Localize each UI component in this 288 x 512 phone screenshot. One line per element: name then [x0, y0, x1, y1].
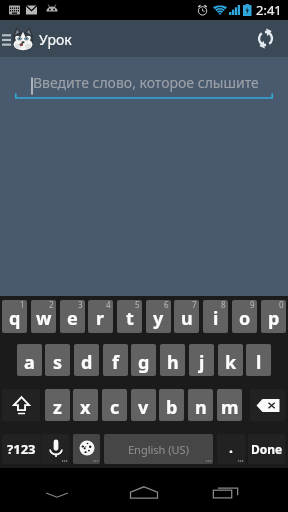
button[interactable]: k	[218, 344, 243, 376]
staticText: z	[53, 395, 62, 420]
button[interactable]: g	[131, 344, 156, 376]
staticText: ?123	[7, 440, 36, 458]
staticText: Введите слово, которое слышите	[33, 73, 259, 92]
staticText: x	[80, 395, 91, 420]
button[interactable]: d	[74, 344, 99, 376]
staticText: l	[256, 350, 262, 375]
staticText: v	[138, 395, 149, 420]
staticText: h	[167, 350, 179, 375]
button[interactable]: Period	[217, 434, 245, 464]
staticText: r	[96, 306, 105, 331]
button[interactable]: v	[131, 389, 156, 421]
staticText: 4	[106, 300, 111, 310]
button[interactable]: h	[160, 344, 185, 376]
staticText: 7	[192, 300, 197, 310]
button[interactable]: x	[73, 389, 98, 421]
staticText: p	[268, 306, 280, 331]
button[interactable]: j	[189, 344, 214, 376]
button[interactable]: i	[203, 300, 228, 333]
button[interactable]: Refresh	[246, 20, 288, 57]
button[interactable]: Symbols	[2, 434, 41, 464]
staticText: .	[229, 438, 233, 457]
staticText: j	[199, 350, 205, 375]
staticText: n	[195, 395, 207, 420]
staticText: e	[67, 306, 78, 331]
staticText: f	[112, 350, 119, 375]
button[interactable]: Voice input	[42, 434, 69, 464]
button[interactable]: Open navigation menu	[0, 20, 12, 57]
staticText: 5	[135, 300, 140, 310]
button[interactable]: a	[17, 344, 42, 376]
button[interactable]: o	[232, 300, 257, 333]
staticText: 8	[221, 300, 226, 310]
staticText: m	[221, 395, 239, 420]
staticText: t	[126, 306, 134, 331]
staticText: q	[9, 306, 21, 331]
button[interactable]: Recent apps	[188, 468, 278, 512]
staticText: a	[24, 350, 35, 375]
button[interactable]: q	[2, 300, 27, 333]
button[interactable]: Done	[248, 434, 285, 464]
button[interactable]: l	[246, 344, 271, 376]
staticText: c	[110, 395, 120, 420]
button[interactable]: c	[102, 389, 127, 421]
button[interactable]: Change keyboard language	[73, 434, 100, 464]
button[interactable]: b	[159, 389, 184, 421]
button[interactable]: Shift	[2, 389, 40, 421]
button[interactable]: e	[60, 300, 85, 333]
button[interactable]: f	[103, 344, 128, 376]
button[interactable]: Введите слово, которое слышите	[0, 57, 288, 103]
button[interactable]: w	[31, 300, 56, 333]
staticText: g	[138, 350, 150, 375]
button[interactable]: z	[45, 389, 70, 421]
button[interactable]: m	[217, 389, 242, 421]
staticText: 9	[250, 300, 255, 310]
button[interactable]: n	[188, 389, 213, 421]
staticText: o	[239, 306, 251, 331]
staticText: 0	[279, 300, 284, 310]
button[interactable]: u	[174, 300, 199, 333]
staticText: 2:41	[256, 1, 282, 19]
staticText: English (US)	[128, 442, 189, 457]
button[interactable]: Back	[20, 468, 110, 512]
staticText: 1	[20, 300, 25, 310]
staticText: w	[36, 306, 52, 331]
staticText: 3	[78, 300, 83, 310]
staticText: y	[153, 306, 164, 331]
button[interactable]: Home	[100, 468, 188, 512]
button[interactable]: p	[261, 300, 286, 333]
staticText: i	[213, 306, 219, 331]
button[interactable]: Delete	[250, 389, 285, 421]
staticText: u	[181, 306, 193, 331]
staticText: 6	[164, 300, 169, 310]
staticText: b	[166, 395, 178, 420]
staticText: d	[81, 350, 93, 375]
button[interactable]: t	[117, 300, 142, 333]
staticText: 2	[49, 300, 54, 310]
staticText: Done	[251, 441, 283, 457]
button[interactable]: y	[146, 300, 171, 333]
staticText: s	[53, 350, 63, 375]
button[interactable]: s	[45, 344, 70, 376]
staticText: Урок	[39, 30, 72, 49]
staticText: k	[225, 350, 237, 375]
button[interactable]: Space	[104, 434, 213, 464]
button[interactable]: r	[88, 300, 113, 333]
